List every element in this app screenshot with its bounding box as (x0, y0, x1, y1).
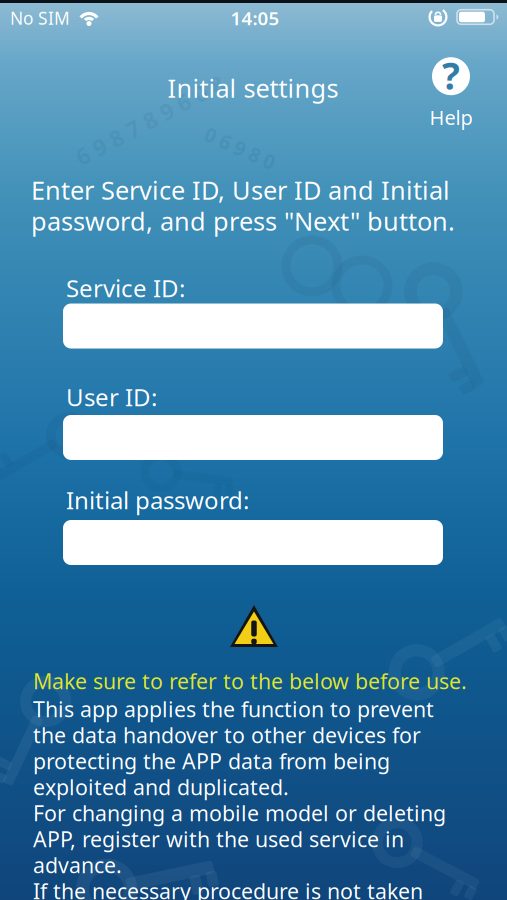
staticText: protecting the APP data from being (33, 747, 390, 775)
button[interactable]: Help (429, 51, 472, 130)
staticText: password, and press "Next" button. (31, 204, 455, 238)
staticText: Make sure to refer to the below before u… (33, 667, 467, 695)
button[interactable]: User ID: (63, 415, 443, 460)
staticText: If the necessary procedure is not taken (33, 877, 423, 900)
staticText: exploited and duplicated. (33, 773, 289, 801)
staticText: No SIM (10, 6, 70, 29)
staticText: advance. (33, 851, 122, 879)
staticText: Initial settings (167, 71, 338, 105)
staticText: For changing a mobile model or deleting (33, 799, 446, 827)
staticText: 0 6 9 8 0 (202, 135, 277, 161)
button[interactable]: Initial password: (63, 520, 443, 565)
staticText: the data handover to other devices for (33, 721, 421, 749)
staticText: User ID: (66, 381, 157, 413)
staticText: ? (442, 50, 460, 100)
staticText: Service ID: (66, 272, 185, 304)
staticText: APP, register with the used service in (33, 825, 404, 853)
staticText: Enter Service ID, User ID and Initial (31, 173, 450, 207)
staticText: 14:05 (230, 6, 279, 30)
staticText: This app applies the function to prevent (33, 695, 434, 723)
staticText: Initial password: (66, 484, 249, 516)
staticText: Help (429, 104, 472, 131)
button[interactable]: Service ID: (63, 303, 443, 348)
